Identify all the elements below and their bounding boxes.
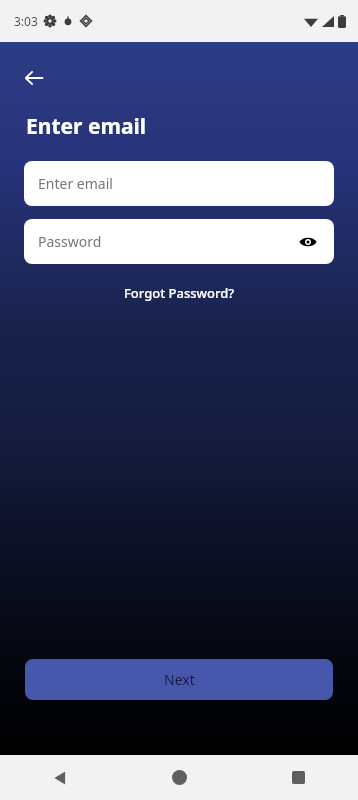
button[interactable]: Next xyxy=(25,659,333,700)
staticText: Forgot Password? xyxy=(124,284,235,302)
button[interactable]: Enter email xyxy=(24,161,334,206)
button[interactable]: Home xyxy=(120,755,239,800)
staticText: Next xyxy=(164,670,195,689)
button[interactable]: Recent apps xyxy=(239,755,358,800)
staticText: 3:03 xyxy=(14,13,38,29)
staticText: Enter email xyxy=(38,174,320,193)
button[interactable]: Back xyxy=(0,755,120,800)
button[interactable]: Forgot Password? xyxy=(118,281,241,305)
button[interactable]: Password xyxy=(24,219,334,264)
staticText: Password xyxy=(38,232,296,251)
staticText: Enter email xyxy=(26,112,147,141)
button[interactable]: Back xyxy=(14,58,54,98)
button[interactable]: Show password xyxy=(296,230,320,254)
